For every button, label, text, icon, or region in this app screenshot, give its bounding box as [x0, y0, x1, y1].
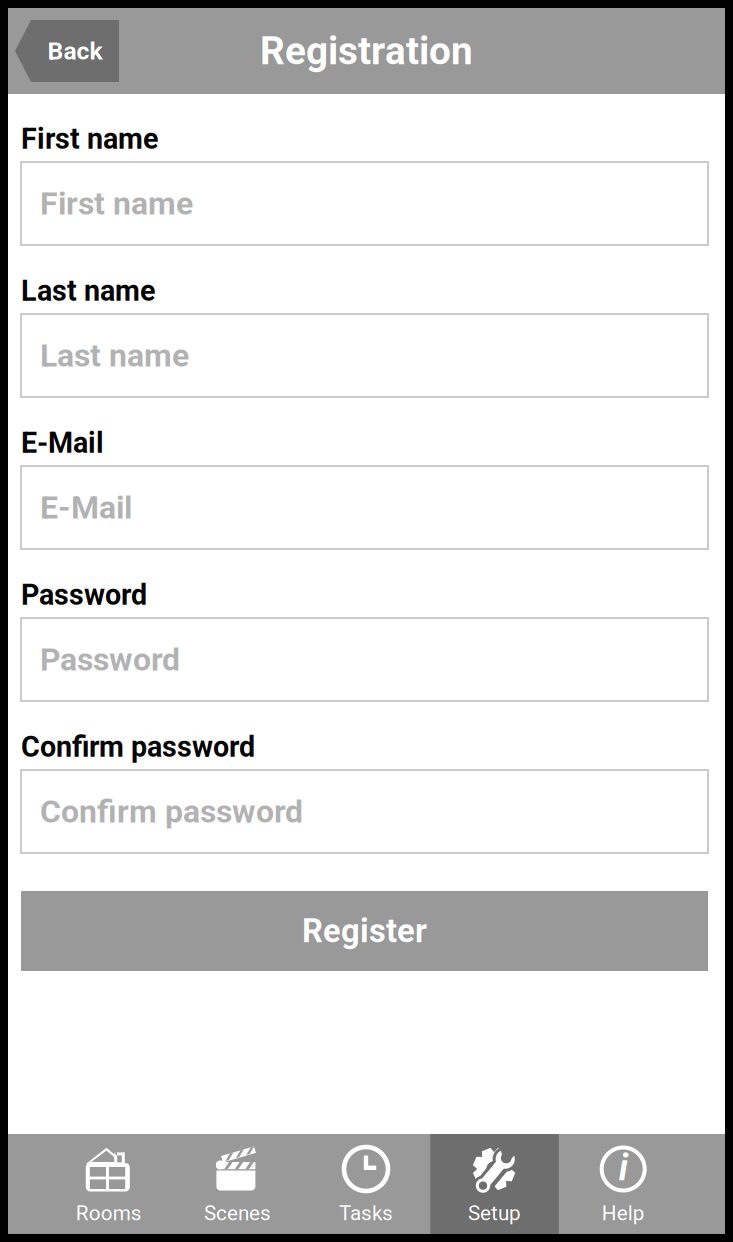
button[interactable]: i — [559, 1134, 687, 1234]
button[interactable]: Last name — [21, 314, 708, 397]
button[interactable]: Password — [21, 618, 708, 701]
staticText: Confirm password — [40, 793, 303, 830]
button[interactable]: Back — [15, 20, 119, 82]
button[interactable]: Setup — [430, 1134, 559, 1234]
button[interactable]: Register — [21, 891, 708, 971]
staticText: Password — [21, 578, 147, 612]
staticText: First name — [40, 185, 193, 222]
button[interactable]: Rooms — [44, 1134, 173, 1234]
button[interactable]: Tasks — [302, 1134, 430, 1234]
staticText: Password — [40, 641, 180, 678]
staticText: Register — [302, 912, 427, 950]
staticText: E-Mail — [21, 426, 104, 460]
staticText: E-Mail — [40, 489, 132, 526]
button[interactable]: Confirm password — [21, 770, 708, 853]
staticText: Last name — [21, 274, 155, 308]
staticText: Back — [47, 36, 102, 65]
staticText: Registration — [260, 28, 473, 74]
staticText: Help — [602, 1201, 645, 1225]
staticText: First name — [21, 122, 158, 156]
staticText: Confirm password — [21, 730, 255, 764]
staticText: Scenes — [204, 1201, 271, 1225]
button[interactable]: E-Mail — [21, 466, 708, 549]
staticText: Setup — [468, 1201, 521, 1225]
button[interactable]: Scenes — [173, 1134, 302, 1234]
staticText: i — [619, 1147, 628, 1189]
staticText: Last name — [40, 337, 189, 374]
staticText: Rooms — [76, 1201, 142, 1225]
button[interactable]: First name — [21, 162, 708, 245]
staticText: Tasks — [339, 1201, 393, 1225]
